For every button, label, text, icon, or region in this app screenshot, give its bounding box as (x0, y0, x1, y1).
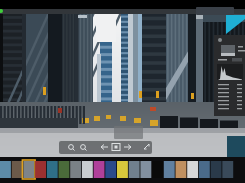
button[interactable] (0, 9, 245, 14)
button[interactable] (214, 35, 245, 116)
button[interactable]: Close window (0, 9, 3, 13)
